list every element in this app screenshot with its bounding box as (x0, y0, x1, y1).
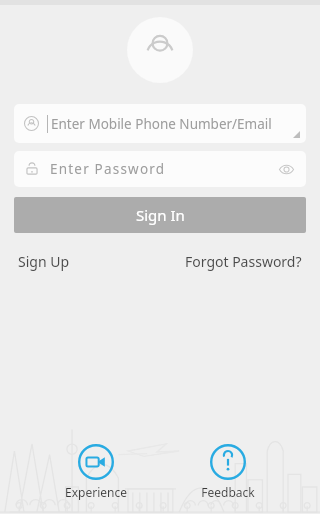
button[interactable]: Forgot Password? (185, 252, 302, 271)
staticText: Sign In (136, 205, 185, 225)
other: Feedback (210, 444, 246, 480)
button[interactable]: Enter Mobile Phone Number/Email (14, 104, 306, 143)
button[interactable]: Sign Up (18, 252, 70, 271)
staticText: Enter Mobile Phone Number/Email (51, 115, 272, 133)
staticText: Experience (65, 484, 127, 500)
other: Experience (78, 444, 114, 480)
button[interactable]: Profile photo (127, 17, 193, 83)
button[interactable]: Experience (55, 442, 137, 502)
button[interactable]: Enter Password (14, 151, 306, 187)
button[interactable]: Feedback (191, 442, 265, 502)
staticText: Enter Password (50, 160, 166, 178)
button[interactable]: Sign In (14, 197, 306, 233)
staticText: Sign Up (18, 252, 70, 271)
button[interactable]: Show password (274, 157, 298, 181)
staticText: Feedback (201, 484, 255, 500)
staticText: Forgot Password? (185, 252, 302, 271)
